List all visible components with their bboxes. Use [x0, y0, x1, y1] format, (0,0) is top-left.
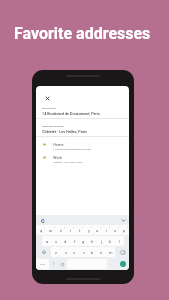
staticText: m	[109, 250, 113, 255]
staticText: 2	[54, 226, 56, 228]
button[interactable]: a	[42, 236, 52, 246]
staticText: z	[55, 250, 57, 255]
staticText: c	[73, 250, 76, 255]
staticText: i	[106, 228, 107, 233]
button[interactable]: j	[97, 236, 106, 246]
staticText: a	[46, 239, 49, 244]
staticText: e	[60, 228, 63, 233]
button[interactable]: x	[61, 247, 70, 257]
button[interactable]: Emoji	[58, 259, 67, 269]
staticText: Pick me up at	[42, 107, 56, 110]
button[interactable]: Work	[36, 155, 129, 168]
button[interactable]: Search	[120, 261, 126, 267]
button[interactable]: m	[106, 247, 115, 257]
staticText: 8	[109, 226, 111, 228]
button[interactable]: Pick me up at	[36, 107, 129, 116]
button[interactable]: n	[97, 247, 106, 257]
button[interactable]: l	[115, 236, 124, 246]
staticText: 14 Boulevard de Douaumont, Paris	[53, 148, 92, 151]
button[interactable]: p	[120, 225, 129, 235]
staticText: Favorite addresses	[14, 24, 151, 43]
staticText: 1	[44, 226, 46, 228]
staticText: b	[91, 250, 94, 255]
button[interactable]: b	[88, 247, 97, 257]
button[interactable]: h	[88, 236, 97, 246]
button[interactable]: Backspace	[115, 247, 129, 257]
staticText: 9	[118, 226, 120, 228]
staticText: u	[96, 228, 99, 233]
staticText: 0	[127, 226, 129, 228]
button[interactable]: t	[75, 225, 84, 235]
button[interactable]: v	[79, 247, 88, 257]
staticText: o	[114, 228, 117, 233]
button[interactable]: g	[79, 236, 88, 246]
button[interactable]: u	[93, 225, 102, 235]
staticText: 4	[73, 226, 75, 228]
staticText: n	[100, 250, 103, 255]
button[interactable]: z	[51, 247, 61, 257]
staticText: Châtelet - Les Halles, Paris	[42, 130, 87, 134]
button[interactable]: Shift	[36, 247, 51, 257]
button[interactable]: ?123	[36, 259, 49, 269]
staticText: .	[111, 262, 112, 266]
staticText: y	[88, 228, 90, 233]
staticText: h	[91, 239, 94, 244]
staticText: /	[53, 262, 55, 266]
button[interactable]: y	[84, 225, 93, 235]
button[interactable]: Google search	[38, 216, 48, 226]
button[interactable]: s	[52, 236, 61, 246]
button[interactable]: f	[70, 236, 79, 246]
button[interactable]: Close	[43, 94, 52, 103]
button[interactable]: Home	[36, 142, 129, 155]
staticText: w	[49, 228, 53, 233]
staticText: g	[82, 239, 85, 244]
button[interactable]: o	[111, 225, 120, 235]
button[interactable]: c	[70, 247, 79, 257]
staticText: s	[55, 239, 58, 244]
staticText: j	[101, 239, 102, 244]
staticText: 5	[82, 226, 84, 228]
staticText: d	[64, 239, 67, 244]
staticText: Home	[53, 142, 64, 147]
button[interactable]: Expand suggestions	[119, 216, 128, 225]
staticText: r	[70, 228, 72, 233]
staticText: Châtelet - Les Halles, Paris	[53, 161, 83, 164]
staticText: 6	[91, 226, 93, 228]
other: Shift	[42, 250, 46, 254]
staticText: f	[74, 239, 76, 244]
staticText: q	[40, 228, 43, 233]
button[interactable]: d	[61, 236, 70, 246]
staticText: l	[119, 239, 120, 244]
button[interactable]: i	[102, 225, 111, 235]
button[interactable]: k	[106, 236, 115, 246]
button[interactable]: w	[46, 225, 56, 235]
button[interactable]: q	[36, 225, 46, 235]
button[interactable]: e	[56, 225, 66, 235]
staticText: v	[83, 250, 85, 255]
staticText: x	[65, 250, 67, 255]
staticText: ?123	[40, 263, 45, 266]
staticText: Work	[53, 155, 62, 160]
staticText: t	[79, 228, 81, 233]
button[interactable]: r	[66, 225, 75, 235]
staticText: k	[109, 239, 112, 244]
other: Backspace	[120, 250, 125, 255]
staticText: Where are you going?	[42, 125, 64, 128]
button[interactable]: Where are you going?	[36, 125, 129, 134]
button[interactable]: Slash	[49, 259, 58, 269]
staticText: p	[123, 228, 126, 233]
staticText: 3	[64, 226, 66, 228]
staticText: 14 Boulevard de Douaumont, Paris	[42, 112, 100, 116]
staticText: 7	[100, 226, 102, 228]
